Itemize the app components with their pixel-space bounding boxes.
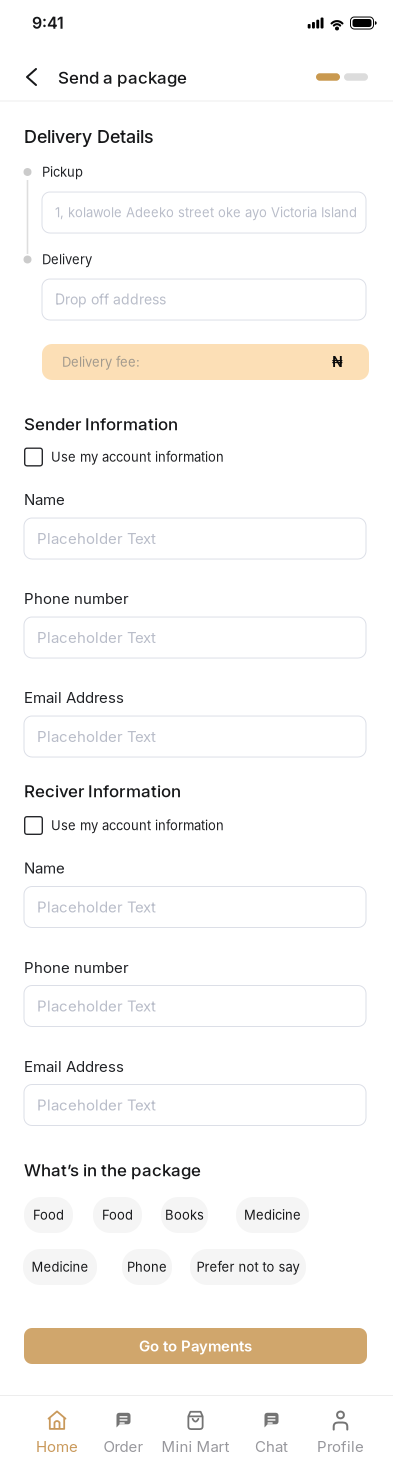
staticText: Sender Information (24, 414, 178, 434)
button[interactable]: Use my account information (24, 816, 224, 835)
staticText: Phone (127, 1259, 167, 1275)
staticText: Prefer not to say (196, 1259, 299, 1275)
staticText: Phone number (24, 590, 129, 607)
staticText: 1, kolawole Adeeko street oke ayo Victor… (55, 205, 357, 220)
staticText: Email Address (24, 1058, 124, 1075)
button[interactable]: Back (24, 69, 39, 85)
staticText: Placeholder Text (37, 1096, 156, 1114)
button[interactable]: Prefer not to say (190, 1249, 306, 1285)
staticText: Order (103, 1438, 143, 1455)
staticText: Food (33, 1207, 64, 1223)
staticText: Chat (255, 1438, 288, 1455)
staticText: Medicine (244, 1207, 301, 1223)
staticText: Send a package (58, 67, 187, 88)
button[interactable]: Food (24, 1197, 73, 1233)
staticText: Medicine (31, 1259, 88, 1275)
staticText: Placeholder Text (37, 728, 156, 745)
staticText: Placeholder Text (37, 997, 156, 1015)
button[interactable]: Medicine (236, 1197, 309, 1233)
staticText: Drop off address (55, 291, 166, 308)
button[interactable]: Profile (317, 1410, 364, 1455)
staticText: Delivery (42, 252, 92, 267)
staticText: Email Address (24, 689, 124, 706)
staticText: Delivery Details (24, 126, 154, 147)
staticText: Placeholder Text (37, 530, 156, 547)
staticText: Phone number (24, 959, 129, 976)
staticText: 9:41 (32, 14, 64, 32)
button[interactable]: Medicine (23, 1249, 97, 1285)
staticText: Name (24, 491, 65, 508)
staticText: Go to Payments (139, 1337, 252, 1355)
staticText: ₦ (332, 354, 343, 370)
staticText: Profile (317, 1438, 364, 1455)
staticText: Use my account information (51, 818, 224, 833)
staticText: Placeholder Text (37, 898, 156, 916)
staticText: What’s in the package (24, 1160, 201, 1180)
button[interactable]: Order (103, 1410, 143, 1455)
staticText: Name (24, 859, 65, 877)
staticText: Use my account information (51, 449, 224, 465)
staticText: Delivery fee: (62, 354, 140, 370)
button[interactable]: Use my account information (24, 447, 224, 466)
button[interactable]: Mini Mart (161, 1410, 229, 1455)
button[interactable]: Home (36, 1410, 78, 1455)
button[interactable]: Food (93, 1197, 142, 1233)
staticText: Mini Mart (161, 1438, 229, 1455)
button[interactable]: Chat (255, 1410, 288, 1455)
staticText: Reciver Information (24, 781, 181, 801)
staticText: Home (36, 1438, 78, 1455)
staticText: Pickup (42, 164, 83, 180)
staticText: Placeholder Text (37, 629, 156, 646)
button[interactable]: Phone (122, 1249, 172, 1285)
button[interactable]: Books (161, 1197, 208, 1233)
staticText: Food (102, 1207, 133, 1223)
staticText: Books (165, 1207, 204, 1223)
button[interactable]: Go to Payments (24, 1328, 367, 1364)
